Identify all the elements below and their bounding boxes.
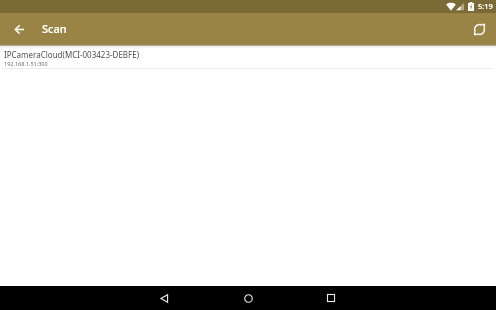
button[interactable]: Back	[147, 286, 181, 310]
staticText: Scan	[42, 21, 67, 36]
staticText: 192.168.1.51:300	[4, 60, 48, 67]
button[interactable]: Back	[2, 13, 36, 45]
button[interactable]: Refresh	[462, 13, 496, 45]
staticText: IPCameraCloud(MCI-003423-DEBFE)	[4, 49, 140, 60]
button[interactable]: Home	[231, 286, 265, 310]
staticText: 5:19	[478, 1, 493, 11]
button[interactable]: IPCameraCloud(MCI-003423-DEBFE)	[0, 45, 496, 69]
button[interactable]: Recents	[314, 286, 348, 310]
